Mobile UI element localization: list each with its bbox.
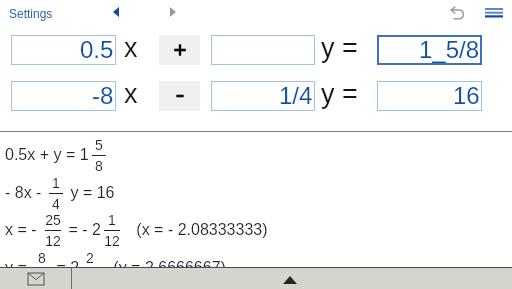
staticText: 8 xyxy=(38,250,46,266)
button[interactable]: Previous xyxy=(107,2,125,22)
staticText: 25 xyxy=(45,212,61,228)
button[interactable]: Plus xyxy=(159,35,200,65)
staticText: x xyxy=(124,79,138,109)
staticText: x = - xyxy=(5,221,42,239)
staticText: 1 xyxy=(108,212,116,228)
staticText: 1 xyxy=(52,175,60,191)
button[interactable]: Next xyxy=(164,2,182,22)
staticText: - 8x - xyxy=(5,184,46,202)
button[interactable]: Settings xyxy=(9,7,53,20)
staticText: 8 xyxy=(95,158,103,174)
button[interactable]: Minus xyxy=(159,81,200,111)
button[interactable]: Undo xyxy=(447,3,468,23)
staticText: 0.5 xyxy=(80,36,114,63)
staticText: 2 xyxy=(86,250,94,266)
staticText: 1/4 xyxy=(279,82,313,109)
staticText: 4 xyxy=(52,196,60,212)
staticText: -8 xyxy=(92,82,114,109)
button[interactable]: Expand xyxy=(281,275,299,285)
staticText: 1_5/8 xyxy=(419,36,480,63)
button[interactable]: Menu xyxy=(481,2,507,22)
button[interactable]: 1/4 xyxy=(211,81,315,111)
staticText: 0.5x + y = 1 xyxy=(5,146,89,164)
button[interactable]: Mail xyxy=(28,273,44,285)
staticText: y = xyxy=(321,33,358,63)
staticText: = - 2 xyxy=(64,221,101,239)
staticText: 12 xyxy=(45,233,61,249)
button[interactable] xyxy=(211,35,315,65)
staticText: 12 xyxy=(104,233,120,249)
staticText: x xyxy=(124,33,138,63)
button[interactable]: 0.5 xyxy=(11,35,116,65)
button[interactable]: -8 xyxy=(11,81,116,111)
staticText: (y = 2.6666667) xyxy=(100,259,226,277)
staticText: 16 xyxy=(453,82,480,109)
staticText: 5 xyxy=(95,137,103,153)
staticText: = 2 xyxy=(52,259,80,277)
staticText: y = xyxy=(5,259,32,277)
button[interactable]: 16 xyxy=(377,81,482,111)
staticText: 3 xyxy=(38,271,46,287)
button[interactable]: 1_5/8 xyxy=(377,35,482,65)
staticText: y = xyxy=(321,79,358,109)
staticText: y = 16 xyxy=(66,184,115,202)
staticText: (x = - 2.08333333) xyxy=(123,221,268,239)
